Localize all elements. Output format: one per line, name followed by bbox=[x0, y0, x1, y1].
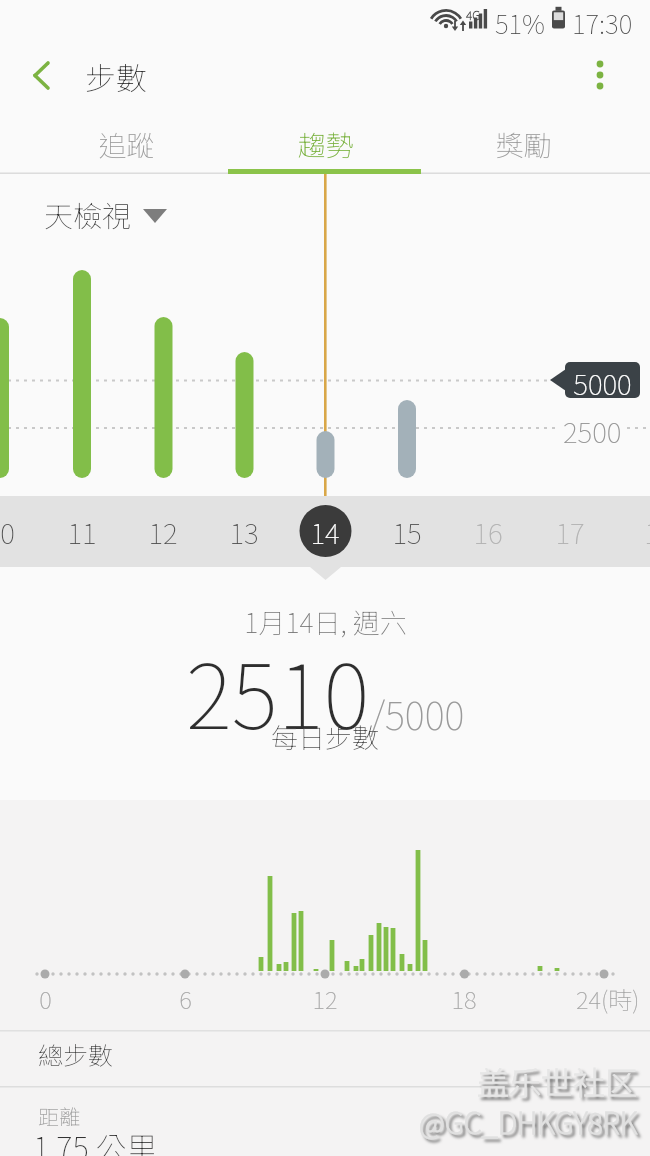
staticText: 0 bbox=[39, 981, 52, 1016]
button[interactable] bbox=[0, 496, 41, 567]
staticText: /5000 bbox=[370, 686, 465, 741]
staticText: 獎勵 bbox=[495, 124, 552, 165]
staticText: 追蹤 bbox=[98, 124, 155, 165]
button[interactable] bbox=[203, 496, 284, 567]
button[interactable] bbox=[228, 118, 421, 173]
staticText: 距離 bbox=[38, 1101, 80, 1131]
button[interactable] bbox=[284, 496, 365, 567]
button[interactable] bbox=[425, 118, 621, 173]
staticText: 13 bbox=[229, 512, 259, 553]
staticText: 12 bbox=[148, 512, 178, 553]
staticText: 17:30 bbox=[572, 4, 633, 42]
button[interactable] bbox=[578, 52, 622, 96]
staticText: 盖乐世社区 bbox=[477, 1058, 638, 1104]
button[interactable] bbox=[365, 496, 446, 567]
staticText: @GC_DHKGY8RK bbox=[419, 1100, 638, 1142]
button[interactable] bbox=[527, 496, 608, 567]
staticText: 14 bbox=[310, 512, 340, 553]
staticText: 步數 bbox=[85, 54, 147, 99]
staticText: 5000 bbox=[573, 363, 632, 404]
staticText: 17 bbox=[555, 512, 585, 553]
staticText: 每日步數 bbox=[271, 717, 379, 756]
staticText: 15 bbox=[392, 512, 422, 553]
staticText: 16 bbox=[473, 512, 503, 553]
staticText: 0 bbox=[0, 512, 15, 553]
staticText: 1 bbox=[644, 512, 650, 553]
button[interactable] bbox=[122, 496, 203, 567]
button[interactable] bbox=[41, 496, 122, 567]
staticText: 2510 bbox=[186, 627, 370, 754]
staticText: 12 bbox=[312, 981, 338, 1016]
button[interactable] bbox=[36, 194, 176, 236]
button[interactable] bbox=[18, 50, 66, 98]
staticText: 天檢視 bbox=[44, 193, 132, 235]
staticText: 51% bbox=[495, 4, 545, 42]
staticText: 4G bbox=[466, 6, 481, 23]
staticText: 24(時) bbox=[576, 981, 640, 1016]
staticText: 2500 bbox=[563, 411, 622, 452]
staticText: 趨勢 bbox=[297, 124, 354, 165]
staticText: 18 bbox=[451, 981, 477, 1016]
staticText: 總步數 bbox=[38, 1036, 114, 1072]
staticText: 11 bbox=[67, 512, 97, 553]
button[interactable] bbox=[0, 1031, 650, 1086]
staticText: 1月14日, 週六 bbox=[244, 602, 407, 641]
button[interactable] bbox=[446, 496, 527, 567]
button[interactable] bbox=[28, 118, 224, 173]
staticText: 6 bbox=[179, 981, 192, 1016]
staticText: 1.75 公里 bbox=[33, 1124, 158, 1156]
